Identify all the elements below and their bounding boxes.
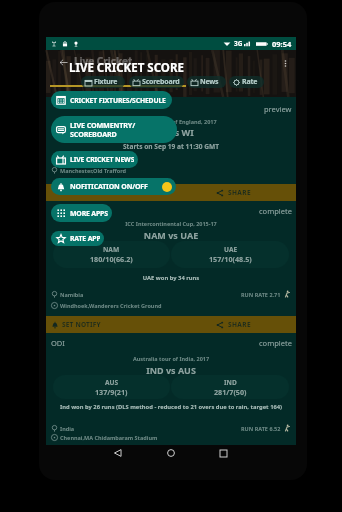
staticText: Namibia — [60, 291, 84, 298]
staticText: Rate — [242, 77, 258, 87]
button[interactable]: SET NOTIFY — [46, 316, 171, 333]
button[interactable]: More options — [278, 56, 292, 70]
staticText: SET NOTIFY — [62, 320, 101, 329]
staticText: 180/10(66.2) — [90, 254, 133, 264]
button[interactable]: Recent apps — [213, 443, 233, 463]
staticText: IND — [224, 378, 237, 387]
staticText: IND vs AUS — [46, 364, 296, 376]
staticText: 281/7(50) — [214, 387, 247, 397]
staticText: Manchester,Old Trafford — [60, 167, 127, 174]
staticText: Ind won by 26 runs (DLS method - reduced… — [53, 403, 289, 411]
staticText: 157/10(48.5) — [209, 254, 252, 264]
button[interactable]: Back — [57, 56, 70, 69]
button[interactable]: LIVE COMMENTRY/ SCOREBOARD — [51, 116, 177, 143]
button[interactable]: Back — [108, 443, 128, 463]
staticText: ENG vs WI — [46, 126, 296, 138]
staticText: SHARE — [228, 188, 251, 197]
staticText: 137/9(21) — [95, 387, 128, 397]
button[interactable]: CRICKET FIXTURES/SCHEDULE — [51, 91, 172, 109]
button[interactable]: LIVE CRICKET NEWS — [51, 151, 138, 168]
staticText: Scoreboard — [142, 77, 180, 87]
staticText: SHARE — [228, 320, 251, 329]
staticText: CRICKET FIXTURES/SCHEDULE — [70, 96, 166, 105]
staticText: RATE APP — [70, 234, 100, 243]
staticText: AUS — [105, 378, 119, 387]
staticText: News — [200, 77, 219, 87]
staticText: Australia tour of India, 2017 — [46, 355, 296, 362]
button[interactable]: Fixture — [81, 76, 125, 88]
staticText: NOFITICATION ON/OFF — [70, 182, 148, 192]
staticText: Starts on Sep 19 at 11:30 GMT — [46, 142, 296, 151]
staticText: Fixture — [94, 77, 118, 87]
button[interactable]: SHARE — [171, 316, 296, 333]
button[interactable]: RATE APP — [51, 231, 104, 246]
button[interactable]: NOFITICATION ON/OFF — [51, 178, 176, 195]
staticText: ODI — [51, 338, 65, 348]
staticText: UAE won by 34 runs — [53, 274, 289, 282]
staticText: NAM vs UAE — [46, 229, 296, 241]
staticText: complete — [259, 338, 292, 348]
staticText: Live Cricket — [74, 54, 133, 68]
staticText: India — [60, 425, 75, 432]
staticText: Windhoek,Wanderers Cricket Ground — [60, 302, 162, 309]
staticText: preview — [264, 104, 292, 114]
staticText: 3G — [234, 39, 243, 48]
staticText: LIVE CRICKET NEWS — [70, 155, 134, 164]
button[interactable]: SHARE — [171, 184, 296, 201]
staticText: Chennai,MA Chidambaram Stadium — [60, 434, 158, 441]
staticText: 09:54 — [272, 39, 292, 49]
button[interactable]: MORE APPS — [51, 204, 112, 222]
button[interactable]: News — [187, 76, 226, 88]
staticText: LIVE CRICKET SCORE — [69, 60, 184, 76]
staticText: RUN RATE 2.71 — [241, 291, 281, 298]
button[interactable] — [46, 184, 171, 201]
staticText: RUN RATE 6.52 — [241, 425, 281, 432]
staticText: LIVE COMMENTRY/ SCOREBOARD — [70, 120, 136, 139]
staticText: UAE — [224, 245, 238, 254]
staticText: NAM — [103, 245, 120, 254]
button[interactable]: Home — [161, 443, 181, 463]
button[interactable]: Rate — [229, 76, 264, 88]
button[interactable]: Scoreboard — [129, 76, 184, 88]
staticText: ICC Intercontinental Cup, 2015-17 — [46, 220, 296, 227]
staticText: Tri Nation Series of England, 2017 — [46, 118, 296, 125]
staticText: complete — [259, 206, 292, 216]
staticText: MORE APPS — [70, 209, 108, 218]
